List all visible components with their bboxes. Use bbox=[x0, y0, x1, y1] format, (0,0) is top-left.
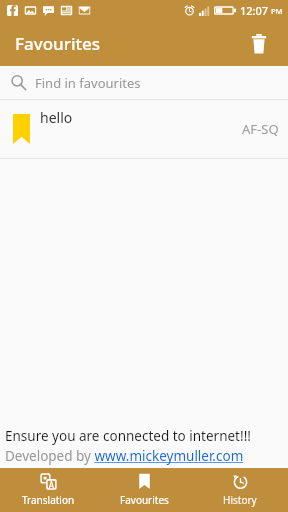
button[interactable]: Translation bbox=[0, 468, 96, 512]
staticText: AF-SQ bbox=[242, 120, 279, 138]
staticText: Favourites bbox=[120, 493, 169, 507]
staticText: Find in favourites bbox=[35, 74, 141, 92]
staticText: hello bbox=[40, 108, 73, 127]
staticText: Favourites bbox=[15, 32, 101, 55]
staticText: Ensure you are connected to internet!!! bbox=[5, 427, 251, 445]
button[interactable]: Search bbox=[0, 66, 288, 99]
button[interactable]: hello bbox=[0, 100, 288, 158]
button[interactable]: History bbox=[192, 468, 288, 512]
button[interactable]: Favourites bbox=[96, 468, 192, 512]
staticText: Translation bbox=[22, 493, 75, 507]
button[interactable]: Delete all favourites bbox=[240, 25, 278, 63]
button[interactable]: Developed by www.mickeymuller.com bbox=[5, 447, 244, 465]
other: Search bbox=[10, 74, 27, 91]
staticText: 12:07 bbox=[240, 3, 269, 18]
staticText: PM bbox=[271, 6, 283, 16]
staticText: History bbox=[223, 493, 257, 507]
